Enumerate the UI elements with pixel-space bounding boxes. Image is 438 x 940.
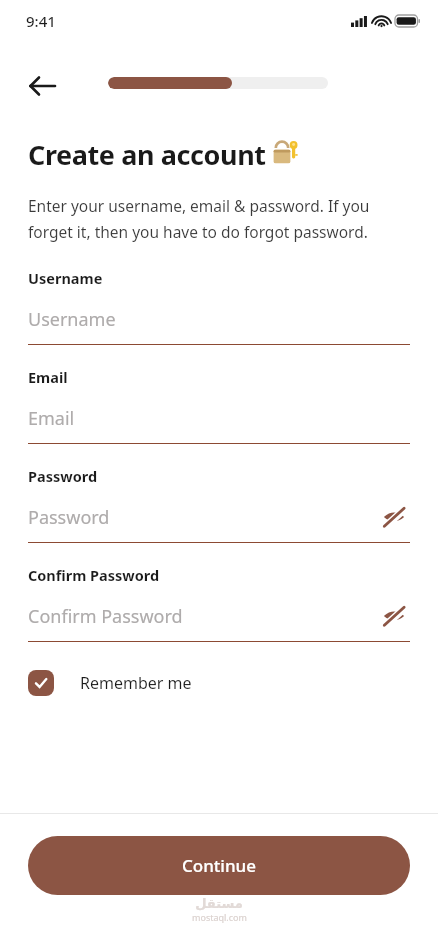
button[interactable]: Back xyxy=(22,68,62,104)
staticText: Username xyxy=(28,307,116,332)
staticText: Enter your username, email & password. I… xyxy=(28,195,370,243)
staticText: Password xyxy=(28,466,98,486)
staticText: Email xyxy=(28,367,68,387)
staticText: مستقل xyxy=(195,896,243,911)
staticText: Continue xyxy=(182,854,257,877)
staticText: Username xyxy=(28,268,103,288)
staticText: 9:41 xyxy=(26,11,56,31)
staticText: Email xyxy=(28,406,75,431)
staticText: Confirm Password xyxy=(28,565,160,585)
button[interactable]: Password xyxy=(28,500,410,534)
button[interactable]: Email xyxy=(28,401,410,435)
button[interactable]: Username xyxy=(28,302,410,336)
button[interactable]: Toggle password visibility xyxy=(378,501,410,533)
button[interactable]: Remember me xyxy=(28,670,192,696)
staticText: mostaql.com xyxy=(192,911,247,923)
button[interactable]: Toggle password visibility xyxy=(378,600,410,632)
staticText: Create an account xyxy=(28,136,266,173)
button[interactable]: Continue xyxy=(28,836,410,895)
staticText: Remember me xyxy=(80,672,192,694)
staticText: Password xyxy=(28,505,110,530)
button[interactable]: Confirm Password xyxy=(28,599,410,633)
staticText: Confirm Password xyxy=(28,604,183,629)
